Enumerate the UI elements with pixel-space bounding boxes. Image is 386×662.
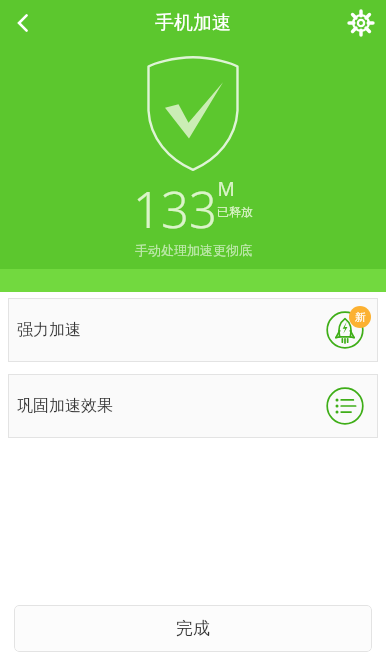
staticText: 巩固加速效果 [17,396,113,416]
button[interactable]: Settings [336,0,386,45]
staticText: 新 [355,310,366,324]
staticText: 已释放 [217,204,253,219]
button[interactable]: Back [0,0,46,45]
button[interactable]: 巩固加速效果 [8,374,378,438]
staticText: 强力加速 [17,320,81,340]
staticText: 完成 [176,618,210,639]
staticText: M [217,176,235,202]
staticText: 手机加速 [155,11,231,35]
staticText: 手动处理加速更彻底 [135,242,252,258]
staticText: 133 [133,176,217,243]
button[interactable]: 完成 [14,605,372,652]
button[interactable]: 强力加速 [8,298,378,362]
